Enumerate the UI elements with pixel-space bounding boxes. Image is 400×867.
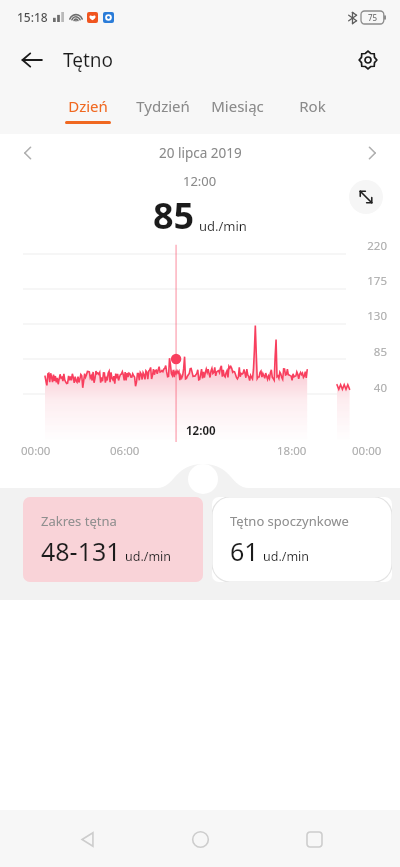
- staticText: Tętno: [63, 47, 114, 73]
- staticText: 48-131: [41, 534, 121, 568]
- button[interactable]: Miesiąc: [200, 86, 275, 134]
- button[interactable]: Dzień: [50, 86, 125, 134]
- button[interactable]: Zakres tętna: [23, 497, 203, 582]
- staticText: 220: [367, 238, 387, 254]
- button[interactable]: Rok: [275, 86, 350, 134]
- staticText: 00:00: [21, 443, 51, 459]
- staticText: 06:00: [110, 443, 140, 459]
- staticText: Tętno spoczynkowe: [230, 512, 349, 530]
- button[interactable]: Back: [60, 812, 114, 866]
- staticText: Rok: [299, 96, 326, 116]
- staticText: Miesiąc: [211, 96, 264, 116]
- button[interactable]: Home: [173, 812, 227, 866]
- button[interactable]: Tydzień: [125, 86, 200, 134]
- button[interactable]: Settings: [348, 40, 388, 80]
- staticText: 18:00: [277, 443, 307, 459]
- staticText: Dzień: [68, 96, 108, 116]
- button[interactable]: Previous day: [10, 135, 46, 171]
- staticText: 75: [368, 12, 378, 23]
- button[interactable]: Time scrubber: [188, 464, 218, 494]
- staticText: ud./min: [263, 548, 310, 565]
- staticText: ud./min: [199, 217, 247, 235]
- button[interactable]: Back: [12, 40, 52, 80]
- staticText: 175: [367, 273, 387, 289]
- staticText: 85: [153, 191, 195, 240]
- button[interactable]: Expand chart: [349, 180, 383, 214]
- staticText: ud./min: [125, 548, 172, 565]
- staticText: Zakres tętna: [41, 512, 117, 530]
- staticText: 130: [367, 308, 387, 324]
- staticText: Tydzień: [136, 96, 190, 116]
- button[interactable]: Recent apps: [287, 812, 341, 866]
- button[interactable]: Next day: [354, 135, 390, 171]
- staticText: 12:00: [183, 172, 217, 190]
- staticText: 85: [373, 344, 387, 360]
- staticText: 12:00: [186, 423, 216, 439]
- button[interactable]: Tętno spoczynkowe: [212, 497, 392, 582]
- staticText: 15:18: [17, 9, 48, 25]
- staticText: 40: [373, 380, 387, 396]
- staticText: 20 lipca 2019: [159, 144, 242, 162]
- staticText: 61: [230, 534, 259, 568]
- staticText: 00:00: [352, 443, 382, 459]
